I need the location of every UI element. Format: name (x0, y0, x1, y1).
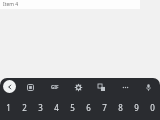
button[interactable]: 2 (16, 95, 32, 120)
staticText: 0 (150, 102, 155, 113)
button[interactable]: 3 (32, 95, 48, 120)
button[interactable]: Voice input (141, 80, 155, 94)
staticText: 5 (70, 102, 75, 113)
button[interactable]: Translate (94, 80, 108, 94)
button[interactable]: GIF (48, 80, 62, 94)
button[interactable]: Stickers (23, 80, 37, 94)
staticText: 1 (6, 102, 11, 113)
staticText: 3 (38, 102, 43, 113)
button[interactable]: Item 4 (0, 0, 140, 9)
button[interactable]: 6 (80, 95, 96, 120)
button[interactable]: 0 (144, 95, 160, 120)
button[interactable]: Settings (71, 80, 85, 94)
button[interactable]: 8 (112, 95, 128, 120)
staticText: 7 (102, 102, 107, 113)
button[interactable]: Expand toolbar (3, 80, 16, 93)
button[interactable]: 7 (96, 95, 112, 120)
staticText: GIF (51, 84, 59, 90)
button[interactable]: 1 (0, 95, 16, 120)
button[interactable]: More options (118, 80, 132, 94)
button[interactable]: 4 (48, 95, 64, 120)
button[interactable]: 5 (64, 95, 80, 120)
staticText: 2 (22, 102, 27, 113)
staticText: 6 (86, 102, 91, 113)
staticText: 4 (54, 102, 59, 113)
staticText: Item 4 (3, 1, 19, 8)
staticText: 9 (134, 102, 139, 113)
button[interactable]: 9 (128, 95, 144, 120)
staticText: 8 (118, 102, 123, 113)
